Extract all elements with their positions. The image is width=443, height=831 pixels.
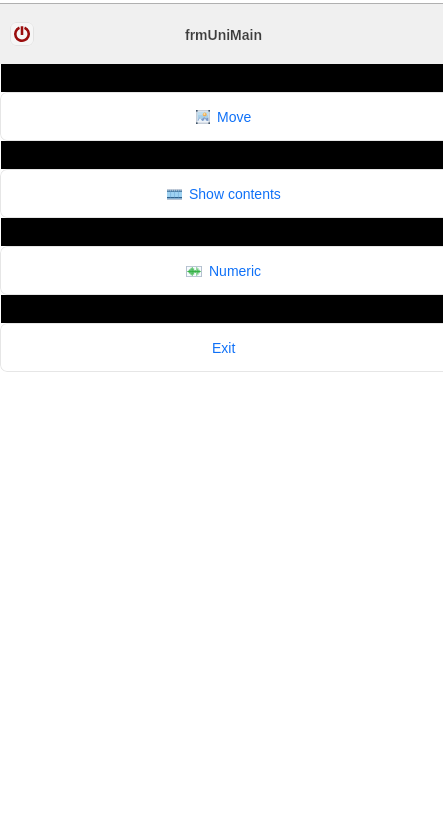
staticText: Move — [217, 109, 252, 125]
staticText: Exit — [212, 340, 236, 356]
staticText: Show contents — [189, 186, 281, 202]
staticText: frmUniMain — [185, 27, 262, 43]
button[interactable]: Numeric — [0, 246, 443, 295]
button[interactable]: Show contents — [0, 169, 443, 218]
button[interactable]: Move — [0, 92, 443, 141]
staticText: Numeric — [209, 263, 262, 279]
button[interactable]: Power — [10, 22, 34, 46]
button[interactable]: Exit — [0, 323, 443, 372]
